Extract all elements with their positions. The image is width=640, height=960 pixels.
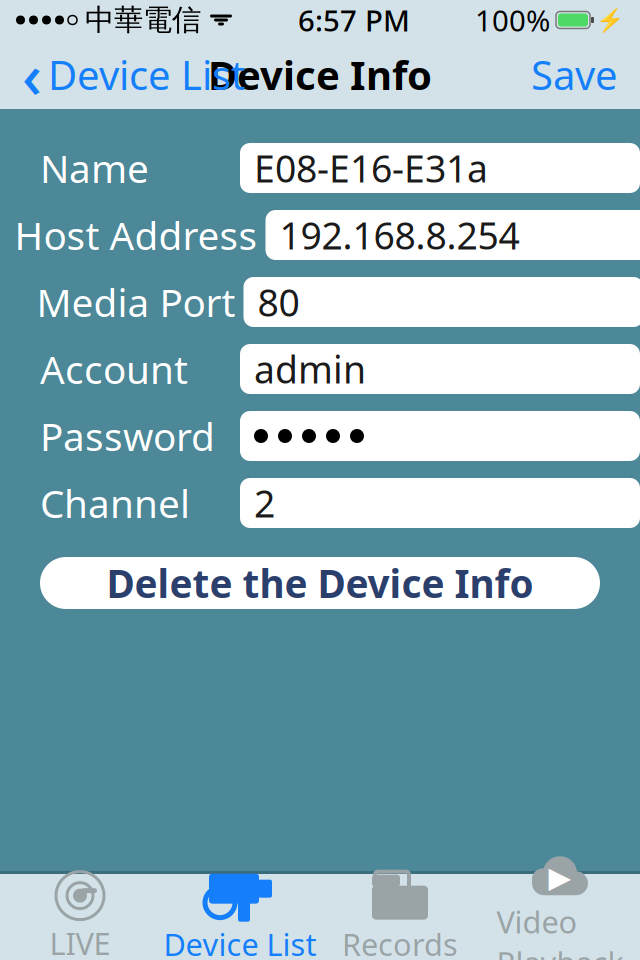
staticText: Video Playback bbox=[496, 901, 623, 960]
staticText: ‹ bbox=[22, 34, 42, 115]
staticText: Save bbox=[531, 48, 618, 101]
staticText: 80 bbox=[257, 277, 299, 327]
staticText: Records bbox=[342, 924, 458, 960]
button[interactable]: LIVE bbox=[0, 874, 160, 960]
staticText: Account bbox=[40, 343, 188, 395]
button[interactable]: Delete the Device Info bbox=[40, 557, 600, 609]
button[interactable]: Device List bbox=[160, 874, 320, 960]
staticText: 6:57 PM bbox=[298, 0, 410, 39]
staticText: E08-E16-E31a bbox=[254, 143, 488, 193]
button[interactable]: Records bbox=[320, 874, 480, 960]
staticText: 100% bbox=[475, 0, 550, 39]
staticText: Media Port bbox=[36, 276, 235, 328]
staticText: 中華電信 bbox=[85, 2, 201, 38]
staticText: 2 bbox=[254, 478, 275, 528]
staticText: ▶ bbox=[548, 861, 571, 894]
staticText: Device List bbox=[48, 48, 245, 101]
staticText: admin bbox=[254, 344, 366, 394]
staticText: Name bbox=[40, 142, 149, 194]
button[interactable]: ▶ bbox=[480, 874, 640, 960]
staticText: ⚡ bbox=[596, 7, 624, 33]
staticText: 192.168.8.254 bbox=[279, 210, 519, 260]
staticText: Device Info bbox=[208, 48, 432, 101]
button[interactable]: Save bbox=[521, 46, 628, 102]
button[interactable]: ‹ bbox=[12, 46, 255, 102]
staticText: Delete the Device Info bbox=[106, 557, 533, 609]
staticText: Host Address bbox=[14, 209, 257, 261]
staticText: Device List bbox=[163, 924, 316, 960]
staticText: LIVE bbox=[49, 923, 110, 960]
staticText: Password bbox=[40, 410, 215, 462]
staticText: Channel bbox=[40, 477, 190, 529]
